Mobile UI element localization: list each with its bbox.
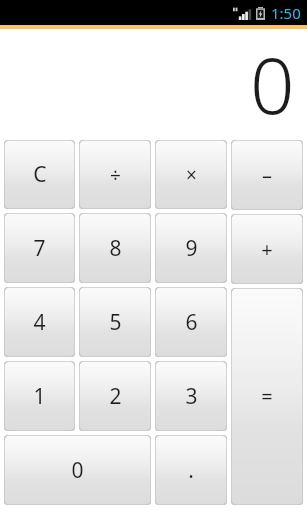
staticText: 7 bbox=[33, 234, 46, 263]
staticText: 8 bbox=[109, 234, 122, 263]
button[interactable]: Plus bbox=[231, 214, 303, 284]
staticText: 9 bbox=[185, 234, 198, 263]
button[interactable]: 9 bbox=[155, 213, 227, 283]
staticText: . bbox=[188, 456, 194, 485]
button[interactable]: 2 bbox=[79, 361, 151, 431]
staticText: + bbox=[261, 236, 273, 263]
button[interactable]: Equals bbox=[231, 288, 303, 505]
staticText: 5 bbox=[109, 308, 122, 337]
button[interactable]: 4 bbox=[4, 287, 75, 357]
staticText: 2 bbox=[109, 382, 122, 411]
staticText: – bbox=[262, 162, 272, 189]
button[interactable]: 1 bbox=[4, 361, 75, 431]
button[interactable]: Multiply bbox=[155, 140, 227, 209]
button[interactable]: 8 bbox=[79, 213, 151, 283]
button[interactable]: 5 bbox=[79, 287, 151, 357]
staticText: 6 bbox=[185, 308, 198, 337]
button[interactable]: Clear bbox=[4, 140, 75, 209]
staticText: ÷ bbox=[110, 162, 121, 188]
staticText: 4 bbox=[33, 308, 46, 337]
staticText: 3 bbox=[185, 382, 198, 411]
button[interactable]: 3 bbox=[155, 361, 227, 431]
button[interactable]: Divide bbox=[79, 140, 151, 209]
staticText: 0 bbox=[71, 456, 84, 485]
button[interactable]: Decimal point bbox=[155, 435, 227, 505]
button[interactable]: Minus bbox=[231, 140, 303, 210]
staticText: 1:50 bbox=[271, 3, 301, 23]
button[interactable]: 7 bbox=[4, 213, 75, 283]
staticText: = bbox=[261, 383, 273, 410]
staticText: 1 bbox=[33, 382, 46, 411]
staticText: C bbox=[33, 160, 47, 189]
button[interactable]: 6 bbox=[155, 287, 227, 357]
staticText: 0 bbox=[250, 31, 295, 137]
staticText: × bbox=[186, 162, 197, 188]
button[interactable]: 0 bbox=[4, 435, 151, 505]
